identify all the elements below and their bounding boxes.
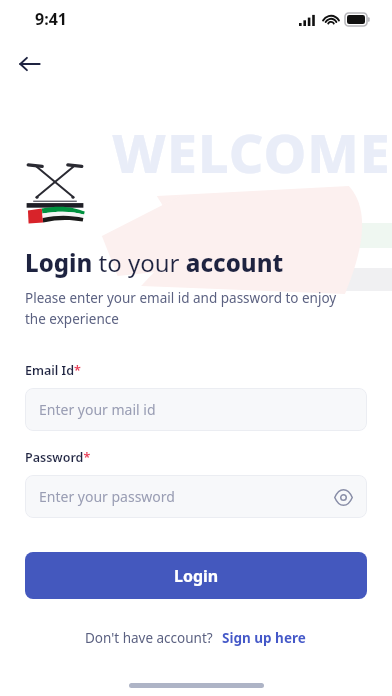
staticText: Enter your password bbox=[39, 487, 175, 506]
staticText: WELCOME bbox=[112, 115, 391, 189]
staticText: Don't have account? bbox=[85, 629, 213, 647]
staticText: Email Id* bbox=[25, 362, 81, 379]
staticText: Login bbox=[174, 565, 219, 587]
button[interactable]: Login bbox=[25, 552, 367, 599]
button[interactable]: Enter your password bbox=[25, 475, 367, 518]
staticText: Password* bbox=[25, 449, 91, 466]
staticText: Sign up here bbox=[222, 629, 306, 647]
button[interactable]: Back bbox=[12, 46, 48, 82]
button[interactable]: Enter your mail id bbox=[25, 388, 367, 431]
staticText: 9:41 bbox=[35, 8, 67, 30]
staticText: Please enter your email id and password … bbox=[25, 289, 337, 328]
button[interactable]: Sign up here bbox=[220, 625, 308, 651]
button[interactable]: Show password bbox=[329, 483, 357, 511]
staticText: Enter your mail id bbox=[39, 400, 156, 419]
staticText: Login to your account bbox=[25, 246, 284, 279]
